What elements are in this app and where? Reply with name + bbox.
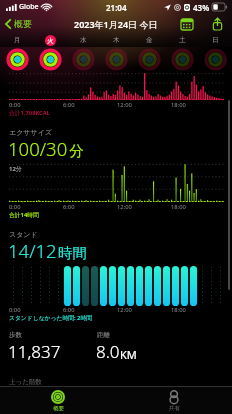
staticText: 共有 (169, 405, 180, 412)
button[interactable] (100, 47, 133, 72)
staticText: スタンドしなかった時間: 2時間 (9, 314, 93, 322)
button[interactable]: Share (209, 16, 225, 32)
staticText: 12:00 (117, 101, 132, 109)
button[interactable]: 水 (67, 33, 100, 47)
staticText: 12:00 (117, 306, 132, 314)
staticText: 木 (113, 36, 120, 44)
button[interactable]: Calendar (179, 16, 195, 32)
staticText: Globe (19, 2, 39, 12)
staticText: 18:00 (171, 101, 186, 109)
button[interactable]: 概要 (0, 387, 116, 414)
button[interactable]: 日 (199, 33, 232, 47)
staticText: 概要 (53, 405, 64, 412)
staticText: エクササイズ (9, 128, 52, 137)
staticText: 12:00 (117, 203, 132, 211)
button[interactable]: 金 (133, 33, 166, 47)
staticText: 土 (179, 36, 186, 44)
staticText: 0:00 (9, 306, 21, 314)
staticText: 0:00 (9, 101, 21, 109)
button[interactable] (34, 47, 67, 72)
button[interactable] (133, 47, 166, 72)
staticText: 18:00 (171, 306, 186, 314)
staticText: 分 (69, 142, 84, 160)
staticText: 2023年1月24日 今日 (74, 18, 158, 30)
staticText: 合計1,708KCAL (9, 109, 50, 117)
staticText: 金 (146, 36, 153, 44)
staticText: 水 (80, 36, 87, 44)
staticText: 月 (14, 36, 21, 44)
button[interactable] (0, 47, 34, 72)
button[interactable] (199, 47, 232, 72)
button[interactable]: 土 (166, 33, 199, 47)
staticText: 0:00 (9, 203, 21, 211)
staticText: 11,837 (8, 340, 61, 363)
staticText: スタンド (9, 230, 38, 239)
staticText: 21:04 (106, 2, 127, 13)
staticText: 12分 (9, 165, 22, 173)
button[interactable]: 上った階数 (0, 378, 232, 386)
staticText: 8.0 (96, 340, 120, 363)
staticText: 合計14時間 (9, 211, 39, 219)
button[interactable] (166, 47, 199, 72)
staticText: 概要 (14, 18, 32, 29)
staticText: 6:00 (63, 203, 75, 211)
staticText: 18:00 (171, 203, 186, 211)
staticText: 43% (193, 2, 210, 13)
staticText: 距離 (97, 331, 110, 339)
staticText: 日 (212, 36, 219, 44)
staticText: 歩数 (9, 331, 22, 339)
staticText: KM (120, 347, 137, 362)
button[interactable]: 火 (34, 33, 67, 47)
staticText: 上った階数 (9, 378, 42, 386)
button[interactable]: 月 (0, 33, 34, 47)
staticText: 時間 (58, 244, 87, 262)
staticText: 火 (47, 37, 54, 45)
staticText: 100/30 (8, 136, 68, 161)
button[interactable]: 共有 (116, 387, 232, 414)
staticText: 14/12 (8, 238, 57, 263)
staticText: 6:00 (63, 306, 75, 314)
button[interactable]: 概要 (0, 15, 36, 32)
button[interactable] (67, 47, 100, 72)
staticText: 6:00 (63, 101, 75, 109)
button[interactable]: 木 (100, 33, 133, 47)
